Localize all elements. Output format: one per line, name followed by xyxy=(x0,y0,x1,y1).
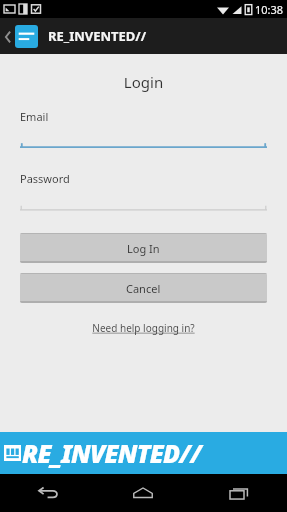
button[interactable]: Back xyxy=(0,474,95,512)
button[interactable] xyxy=(20,205,267,211)
staticText: RE_INVENTED// xyxy=(48,27,147,45)
button[interactable]: Log In xyxy=(20,233,267,263)
button[interactable]: Home xyxy=(95,474,191,512)
staticText: Email xyxy=(20,109,49,124)
staticText: RE_INVENTED// xyxy=(22,436,202,470)
button[interactable]: RE_INVENTED// xyxy=(0,432,287,474)
button[interactable]: Recent apps xyxy=(191,474,287,512)
staticText: Login xyxy=(0,72,287,92)
staticText: 10:38 xyxy=(255,2,284,17)
button[interactable]: Navigate up xyxy=(0,21,43,52)
button[interactable]: Cancel xyxy=(20,273,267,303)
button[interactable] xyxy=(20,143,267,149)
staticText: Password xyxy=(20,171,70,186)
staticText: Log In xyxy=(127,241,160,256)
button[interactable]: Need help logging in? xyxy=(0,319,287,337)
staticText: Cancel xyxy=(126,281,161,296)
